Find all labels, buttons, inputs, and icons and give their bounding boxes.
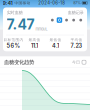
staticText: 4.1	[52, 42, 59, 49]
staticText: 87%	[73, 1, 81, 5]
staticText: 今日	[72, 60, 80, 65]
staticText: 实时血糖	[6, 10, 22, 15]
staticText: 9:41	[2, 0, 12, 6]
staticText: 中国移动	[14, 1, 30, 5]
staticText: 最高值	[28, 37, 40, 42]
staticText: 7.23	[70, 42, 82, 49]
staticText: 血糖记录	[67, 10, 83, 15]
staticText: 目标范围内	[3, 37, 23, 42]
staticText: 最低值	[49, 37, 61, 42]
staticText: 56%	[6, 42, 20, 49]
staticText: 平均值	[70, 37, 82, 42]
staticText: 2024-06-18	[38, 0, 65, 6]
staticText: 血糖变化趋势	[4, 59, 34, 65]
staticText: 7.47	[6, 16, 34, 33]
staticText: 11.1	[31, 42, 38, 49]
staticText: mmol/L	[35, 27, 47, 31]
